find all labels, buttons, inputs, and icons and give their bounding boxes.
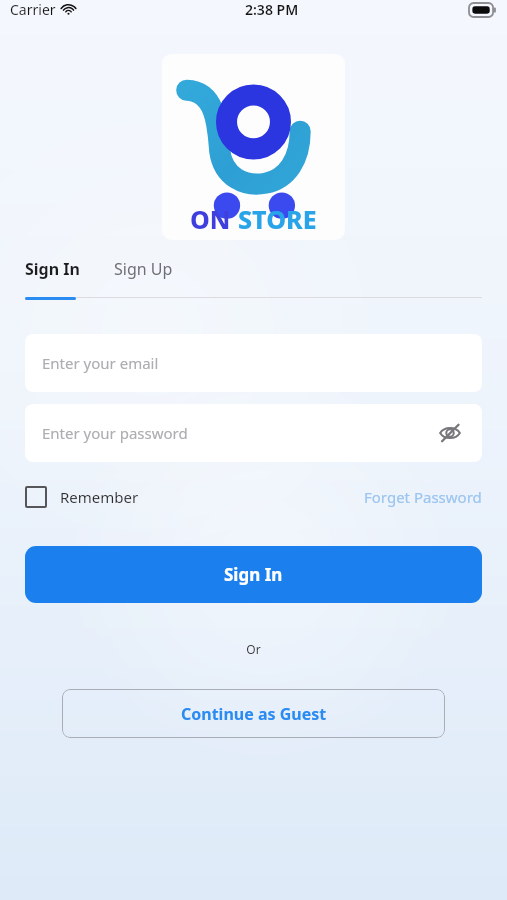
staticText: STORE xyxy=(238,202,317,236)
button[interactable]: Continue as Guest xyxy=(62,689,445,738)
staticText: ON xyxy=(190,202,231,236)
staticText: Sign Up xyxy=(114,258,173,280)
button[interactable]: Remember xyxy=(25,486,139,508)
button[interactable]: Show password xyxy=(435,418,465,448)
staticText: Forget Password xyxy=(364,487,482,507)
button[interactable]: Sign Up xyxy=(114,254,173,284)
staticText: Remember xyxy=(60,487,139,507)
staticText: Sign In xyxy=(224,563,283,586)
button[interactable]: Sign In xyxy=(25,254,80,284)
staticText: Continue as Guest xyxy=(181,703,327,725)
staticText: Enter your email xyxy=(42,353,159,373)
staticText: Sign In xyxy=(25,258,80,280)
button[interactable]: Enter your password xyxy=(25,404,482,462)
staticText: Or xyxy=(0,641,507,657)
button[interactable]: Enter your email xyxy=(25,334,482,392)
staticText: 2:38 PM xyxy=(245,0,299,19)
staticText: Enter your password xyxy=(42,423,188,443)
button[interactable]: Forget Password xyxy=(364,487,482,507)
button[interactable]: Sign In xyxy=(25,546,482,603)
staticText: Carrier xyxy=(10,0,56,19)
